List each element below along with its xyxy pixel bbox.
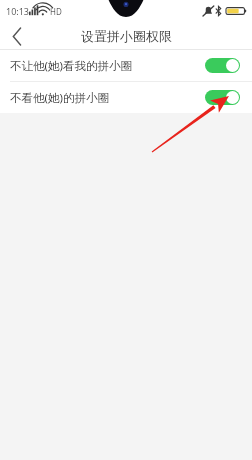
button[interactable]: 返回 [0,22,34,50]
staticText: HD [50,6,62,17]
staticText: 不看他(她)的拼小圈 [10,90,205,106]
button[interactable]: 不看他(她)的拼小圈 [0,82,252,113]
staticText: 不让他(她)看我的拼小圈 [10,58,205,74]
button[interactable]: 不让他(她)看我的拼小圈 [0,50,252,81]
button[interactable]: 开关：不看他(她)的拼小圈 [205,90,240,105]
staticText: 设置拼小圈权限 [81,28,172,44]
staticText: 10:13 [6,5,30,17]
button[interactable]: 开关：不让他(她)看我的拼小圈 [205,58,240,73]
